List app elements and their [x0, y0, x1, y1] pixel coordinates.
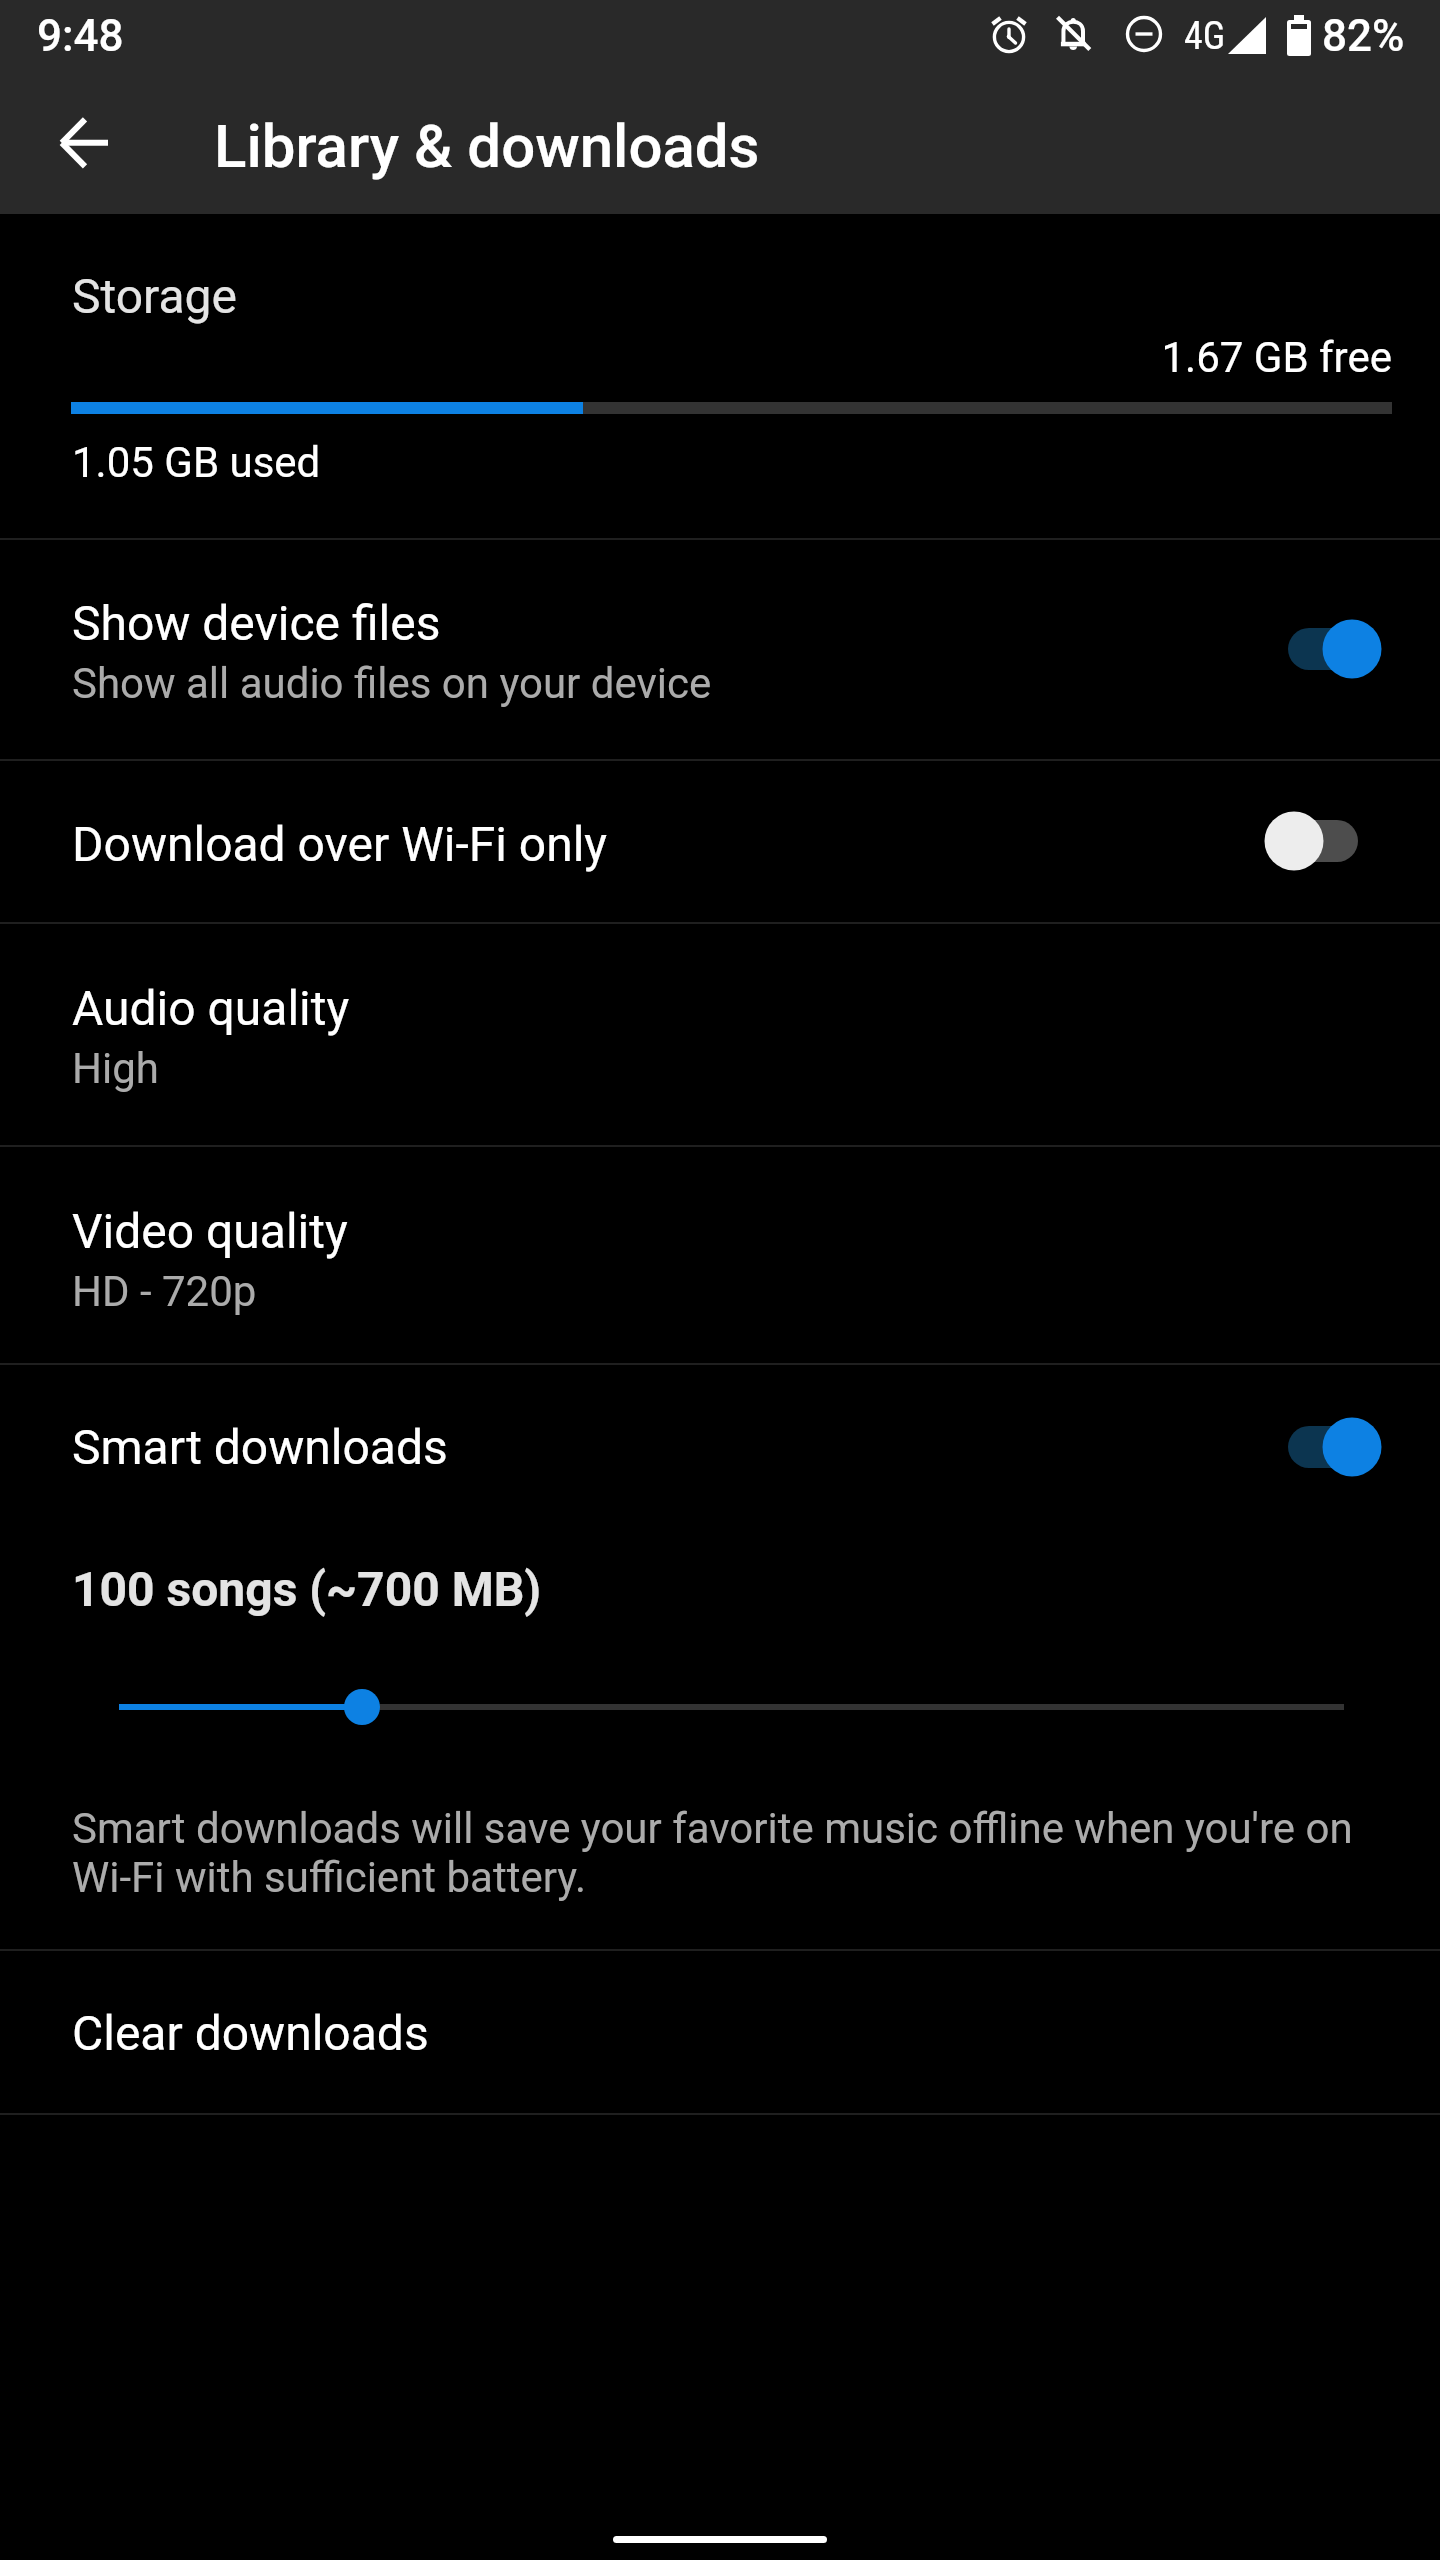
staticText: 82%: [1322, 10, 1405, 62]
button[interactable]: Download over Wi-Fi only: [0, 761, 1440, 922]
staticText: Clear downloads: [72, 2005, 429, 2061]
staticText: Storage: [72, 268, 237, 324]
staticText: Video quality: [72, 1203, 348, 1259]
button[interactable]: Clear downloads: [0, 1951, 1440, 2113]
staticText: 1.67 GB free: [0, 333, 1392, 382]
button[interactable]: Toggle off: [1241, 793, 1383, 889]
staticText: Audio quality: [72, 980, 350, 1036]
staticText: Library & downloads: [214, 111, 760, 181]
staticText: 4G: [1184, 14, 1226, 59]
staticText: 9:48: [37, 10, 124, 62]
button[interactable]: Back: [16, 78, 152, 214]
button[interactable]: Storage: [0, 214, 1440, 538]
button[interactable]: Toggle on: [1264, 601, 1406, 697]
staticText: 1.05 GB used: [72, 438, 321, 487]
button[interactable]: Show device files: [0, 540, 1440, 759]
staticText: Download over Wi-Fi only: [72, 816, 608, 872]
staticText: Show device files: [72, 595, 441, 651]
staticText: Smart downloads: [72, 1419, 448, 1475]
staticText: 100 songs (~700 MB): [72, 1561, 542, 1617]
button[interactable]: Toggle on: [1264, 1399, 1406, 1495]
staticText: HD - 720p: [72, 1267, 257, 1316]
staticText: High: [72, 1044, 159, 1093]
button[interactable]: Audio quality: [0, 924, 1440, 1145]
button[interactable]: Video quality: [0, 1147, 1440, 1363]
staticText: Show all audio files on your device: [72, 659, 712, 708]
staticText: Smart downloads will save your favorite …: [72, 1804, 1382, 1902]
